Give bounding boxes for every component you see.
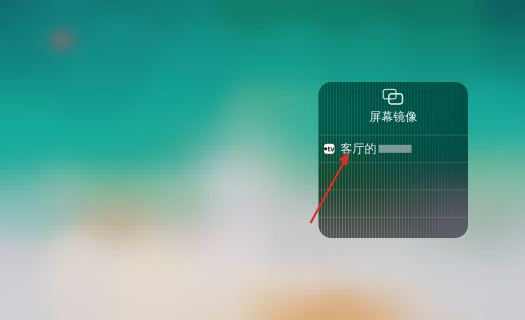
staticText: tv [327,144,334,153]
button[interactable]: AirPlay destination [318,163,468,189]
staticText: 屏幕镜像 [369,109,417,124]
staticText: 客厅的 [340,141,376,156]
button[interactable]: AirPlay destination [318,190,468,217]
button[interactable]: tv [318,135,468,162]
button[interactable]: AirPlay destination [318,218,468,244]
